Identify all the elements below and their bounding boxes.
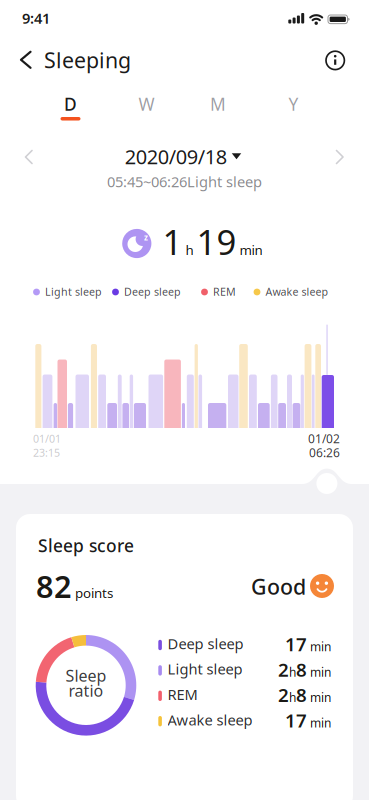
- button[interactable]: Back: [0, 0, 369, 84]
- staticText: 01/02: [308, 430, 340, 446]
- staticText: Awake sleep: [265, 284, 328, 299]
- staticText: 2020/09/18: [125, 143, 227, 170]
- staticText: 2h8 min: [278, 682, 331, 707]
- staticText: W: [138, 92, 154, 115]
- staticText: 17 min: [285, 632, 331, 656]
- button[interactable]: D: [48, 91, 92, 117]
- staticText: 05:45~06:26Light sleep: [107, 172, 262, 191]
- staticText: M: [210, 92, 226, 115]
- staticText: Good: [251, 572, 306, 601]
- button[interactable]: Y: [271, 91, 315, 117]
- staticText: D: [64, 92, 77, 115]
- staticText: ratio: [68, 680, 103, 701]
- staticText: 9:41: [22, 8, 50, 28]
- staticText: Sleeping: [44, 46, 131, 74]
- button[interactable]: 2020/09/18: [125, 143, 241, 170]
- staticText: 1 h 19 min: [162, 218, 262, 264]
- staticText: 2h8 min: [278, 657, 331, 682]
- staticText: Light sleep: [167, 659, 242, 679]
- staticText: Light sleep: [45, 284, 102, 299]
- staticText: REM: [167, 685, 197, 704]
- staticText: Sleep: [65, 665, 106, 686]
- staticText: Deep sleep: [167, 634, 243, 653]
- staticText: 01/01: [33, 431, 61, 446]
- staticText: Awake sleep: [167, 710, 252, 729]
- staticText: Y: [288, 92, 298, 115]
- staticText: z: [144, 232, 148, 243]
- button[interactable]: Info: [325, 50, 345, 70]
- button[interactable]: M: [196, 91, 240, 117]
- button[interactable]: W: [124, 91, 168, 117]
- staticText: 23:15: [33, 445, 60, 460]
- staticText: 82 points: [36, 566, 113, 606]
- button[interactable]: Next day: [335, 149, 344, 164]
- staticText: 06:26: [309, 444, 340, 460]
- staticText: Sleep score: [38, 534, 134, 557]
- staticText: REM: [213, 284, 236, 299]
- staticText: 17 min: [285, 708, 331, 733]
- staticText: Deep sleep: [124, 284, 181, 299]
- button[interactable]: Previous day: [24, 149, 33, 164]
